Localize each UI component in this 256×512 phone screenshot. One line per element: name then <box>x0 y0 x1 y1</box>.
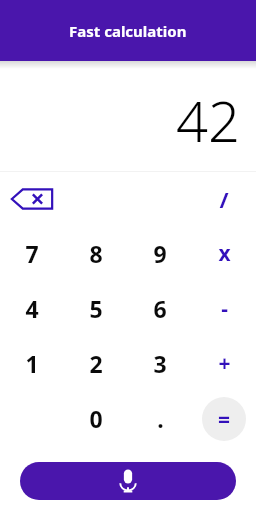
staticText: 7 <box>25 238 39 269</box>
button[interactable]: 2 <box>64 336 128 391</box>
button[interactable]: 1 <box>0 336 64 391</box>
staticText: 0 <box>89 403 103 434</box>
button[interactable]: - <box>192 281 256 336</box>
staticText: 1 <box>25 348 39 379</box>
button[interactable]: 4 <box>0 281 64 336</box>
staticText: 5 <box>89 293 103 324</box>
button[interactable]: 6 <box>128 281 192 336</box>
staticText: 42 <box>176 82 240 158</box>
staticText: 2 <box>89 348 103 379</box>
staticText: - <box>221 294 228 323</box>
button[interactable]: 5 <box>64 281 128 336</box>
staticText: + <box>218 349 231 378</box>
staticText: 3 <box>153 348 167 379</box>
button[interactable]: . <box>128 391 192 446</box>
button[interactable]: = <box>202 397 246 441</box>
button[interactable]: 3 <box>128 336 192 391</box>
button[interactable]: 0 <box>64 391 128 446</box>
button[interactable]: 8 <box>64 226 128 281</box>
button[interactable]: Voice input <box>20 462 236 500</box>
button[interactable]: + <box>192 336 256 391</box>
staticText: Fast calculation <box>69 21 187 41</box>
staticText: 8 <box>89 238 103 269</box>
staticText: = <box>218 405 231 434</box>
button[interactable]: Backspace <box>0 172 64 226</box>
button[interactable]: 7 <box>0 226 64 281</box>
staticText: 4 <box>25 293 39 324</box>
staticText: 9 <box>153 238 167 269</box>
staticText: 6 <box>153 293 167 324</box>
staticText: . <box>157 403 164 434</box>
button[interactable]: x <box>192 226 256 281</box>
staticText: / <box>219 184 229 214</box>
button[interactable]: / <box>192 172 256 226</box>
button[interactable]: 9 <box>128 226 192 281</box>
staticText: x <box>218 239 231 268</box>
